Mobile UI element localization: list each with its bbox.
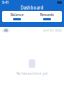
staticText: No transactions yet — [16, 72, 47, 75]
staticText: Balance — [10, 13, 23, 17]
staticText: Rewards — [40, 13, 54, 17]
staticText: Dashboard — [20, 5, 43, 11]
staticText: All — [4, 29, 8, 32]
button[interactable]: Rewards — [32, 11, 62, 22]
button[interactable]: Sort by date — [43, 29, 62, 32]
staticText: 9:41 — [2, 0, 8, 5]
button[interactable]: Balance — [2, 11, 32, 22]
button[interactable]: All — [2, 28, 10, 32]
staticText: Sort by date — [43, 29, 62, 32]
